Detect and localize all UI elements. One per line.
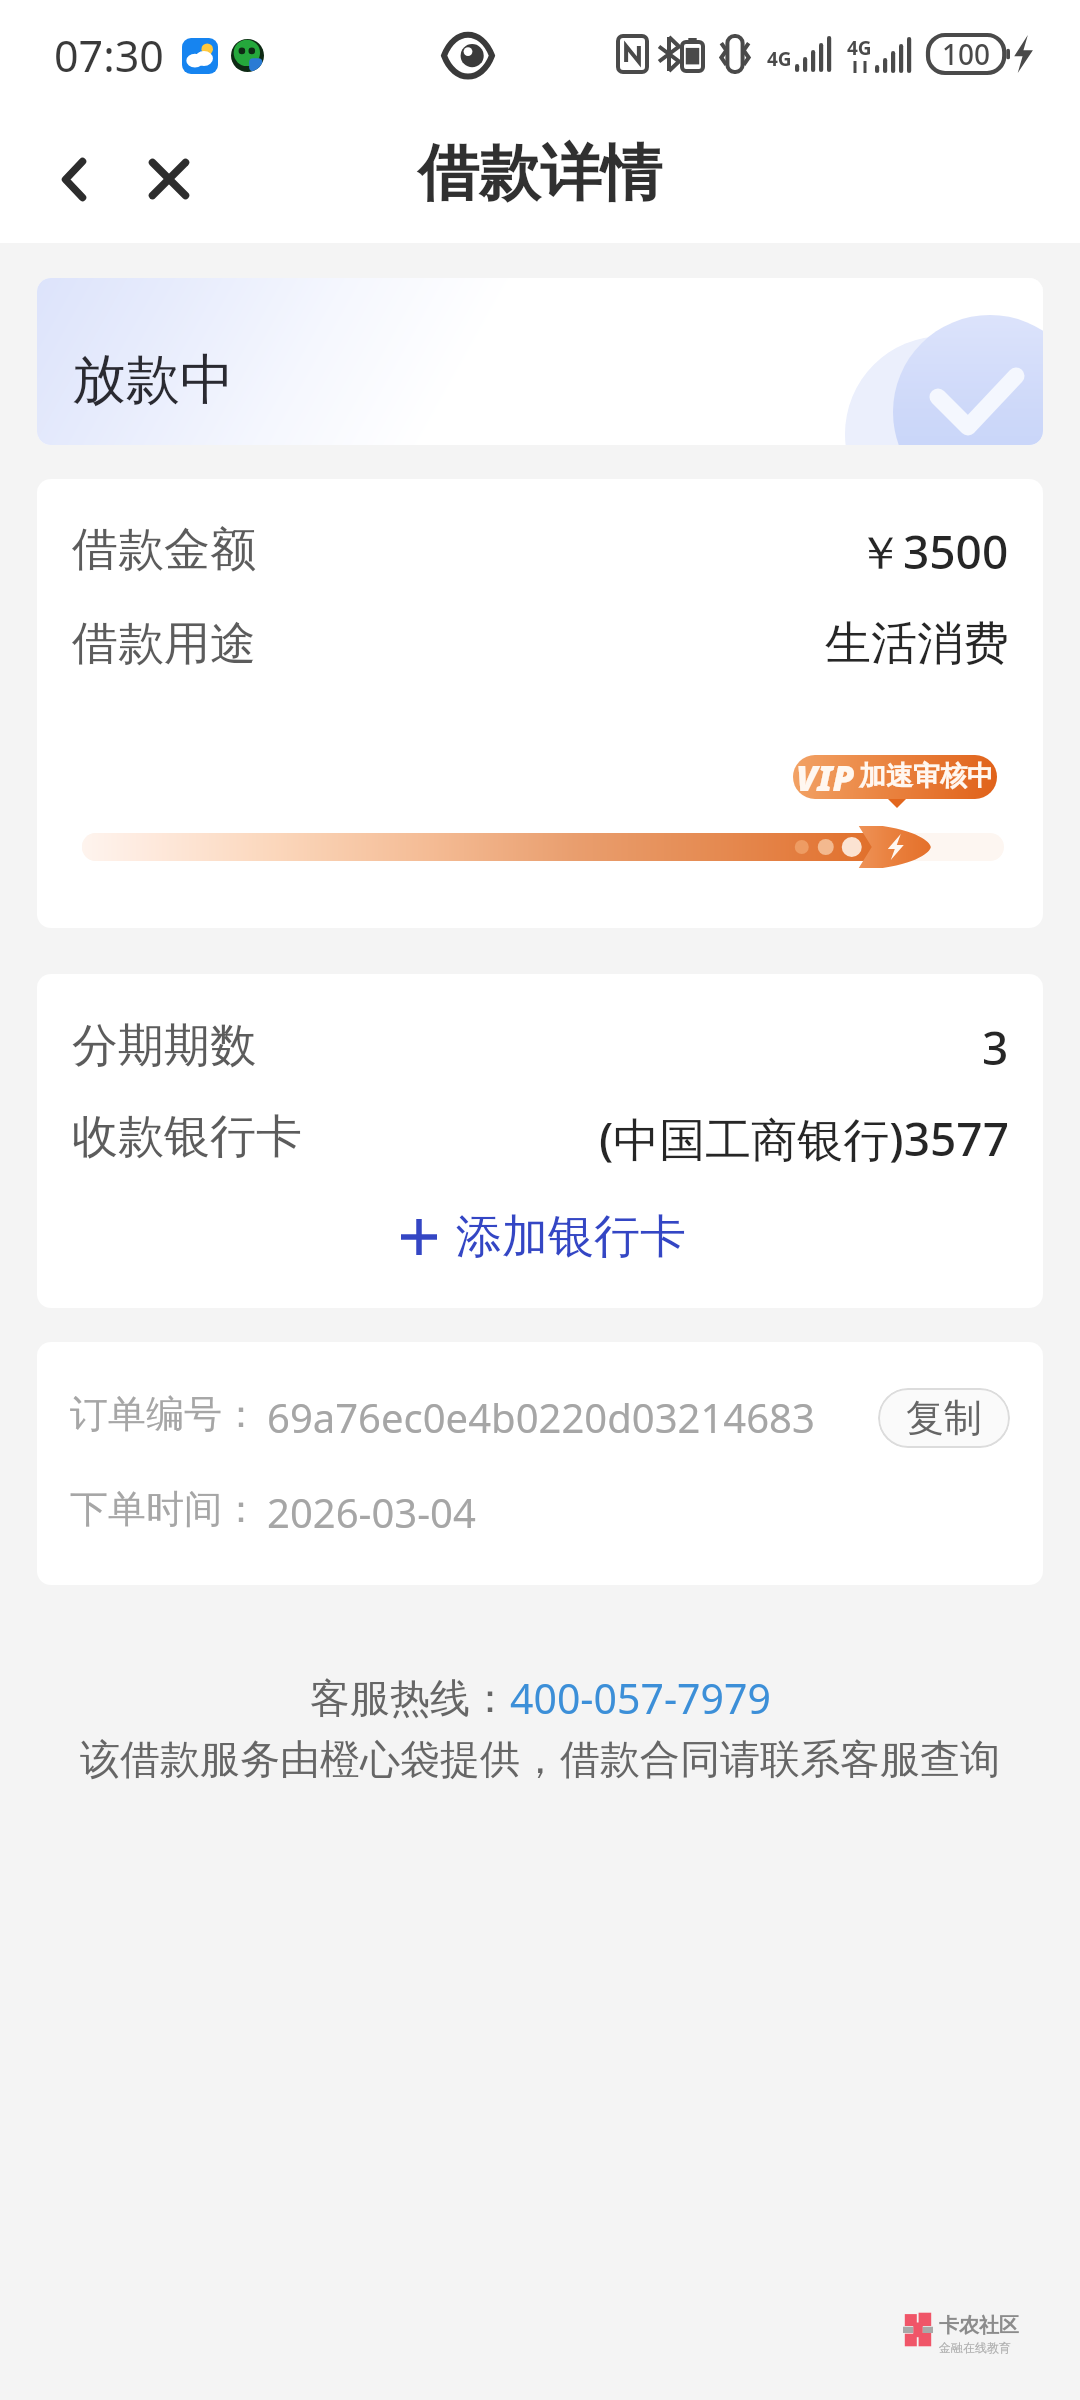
- staticText: 4G: [767, 46, 792, 72]
- staticText: 07:30: [54, 26, 164, 85]
- staticText: 3: [982, 1016, 1009, 1076]
- button[interactable]: 添加银行卡: [401, 1202, 686, 1272]
- button[interactable]: Close: [125, 135, 213, 223]
- staticText: ￥3500: [857, 520, 1009, 580]
- button[interactable]: 复制: [878, 1388, 1010, 1448]
- staticText: 借款用途: [72, 615, 256, 673]
- staticText: 添加银行卡: [456, 1208, 686, 1266]
- staticText: 借款详情: [418, 135, 662, 212]
- staticText: 400-057-7979: [510, 1670, 771, 1726]
- staticText: 生活消费: [825, 615, 1009, 673]
- staticText: 借款金额: [72, 521, 256, 579]
- staticText: 放款中: [72, 346, 234, 414]
- staticText: VIP: [796, 755, 855, 798]
- staticText: 金融在线教育: [939, 2340, 1011, 2355]
- staticText: 收款银行卡: [72, 1108, 302, 1166]
- staticText: 分期期数: [72, 1017, 256, 1075]
- staticText: (中国工商银行)3577: [599, 1107, 1009, 1167]
- staticText: 订单编号：: [70, 1390, 260, 1438]
- staticText: 2026-03-04: [267, 1485, 476, 1533]
- staticText: 100: [942, 35, 991, 73]
- staticText: 该借款服务由橙心袋提供，借款合同请联系客服查询: [80, 1734, 1000, 1784]
- staticText: 卡农社区: [939, 2313, 1019, 2338]
- staticText: 加速审核中: [859, 759, 994, 793]
- staticText: 下单时间：: [70, 1485, 260, 1533]
- staticText: 69a76ec0e4b0220d03214683: [267, 1390, 815, 1438]
- button[interactable]: Back: [30, 135, 118, 223]
- staticText: 复制: [906, 1394, 982, 1442]
- staticText: 客服热线：: [310, 1673, 510, 1723]
- staticText: 4G: [847, 35, 872, 61]
